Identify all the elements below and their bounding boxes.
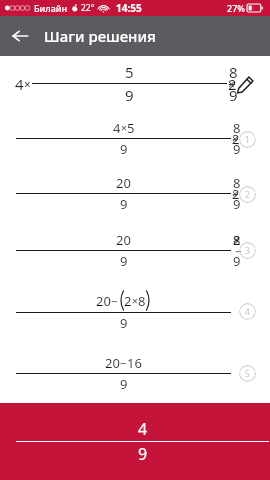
button[interactable]: Step 1 (232, 124, 262, 154)
staticText: 20 (116, 174, 131, 192)
staticText: 5 (127, 119, 135, 137)
staticText: Билайн (34, 2, 68, 14)
button[interactable]: 20 (0, 343, 270, 403)
button[interactable]: Step 2 (232, 179, 262, 209)
staticText: 2 (245, 189, 250, 201)
button[interactable]: 20 (0, 166, 270, 221)
staticText: 20 (105, 354, 120, 372)
staticText: 8 (138, 292, 146, 310)
staticText: × (24, 76, 31, 92)
staticText: 9 (138, 443, 148, 465)
staticText: 20 (116, 231, 131, 249)
button[interactable]: 4 (0, 111, 270, 166)
staticText: 9 (120, 140, 128, 158)
button[interactable]: Back (0, 16, 40, 56)
staticText: 9 (120, 195, 128, 213)
staticText: 2 (124, 292, 132, 310)
button[interactable]: Edit (228, 67, 262, 101)
staticText: − (120, 355, 127, 371)
staticText: 9 (120, 375, 128, 393)
staticText: 27% (227, 2, 245, 14)
staticText: 9 (120, 314, 128, 332)
button[interactable]: Step 3 (232, 235, 262, 265)
staticText: 1 (245, 134, 250, 146)
staticText: × (132, 294, 138, 308)
staticText: 4 (15, 74, 24, 94)
staticText: Шаги решения (44, 26, 156, 46)
staticText: × (121, 121, 127, 135)
staticText: 9 (125, 85, 134, 105)
staticText: 3 (245, 245, 250, 257)
button[interactable]: 4 (0, 56, 270, 111)
staticText: 4 (113, 119, 121, 137)
staticText: 22° (81, 2, 95, 14)
button[interactable]: 20 (0, 279, 270, 343)
button[interactable]: 20 (0, 221, 270, 279)
staticText: 4 (138, 418, 148, 440)
button[interactable]: Step 5 (232, 358, 262, 388)
staticText: 5 (125, 62, 134, 82)
staticText: 9 (120, 252, 128, 270)
staticText: − (111, 293, 118, 309)
staticText: 16 (127, 354, 142, 372)
button[interactable]: 4 (0, 403, 270, 480)
staticText: 5 (245, 368, 250, 380)
staticText: 14:55 (116, 1, 142, 15)
staticText: 20 (96, 292, 111, 310)
staticText: 4 (245, 306, 250, 318)
button[interactable]: Step 4 (232, 296, 262, 326)
